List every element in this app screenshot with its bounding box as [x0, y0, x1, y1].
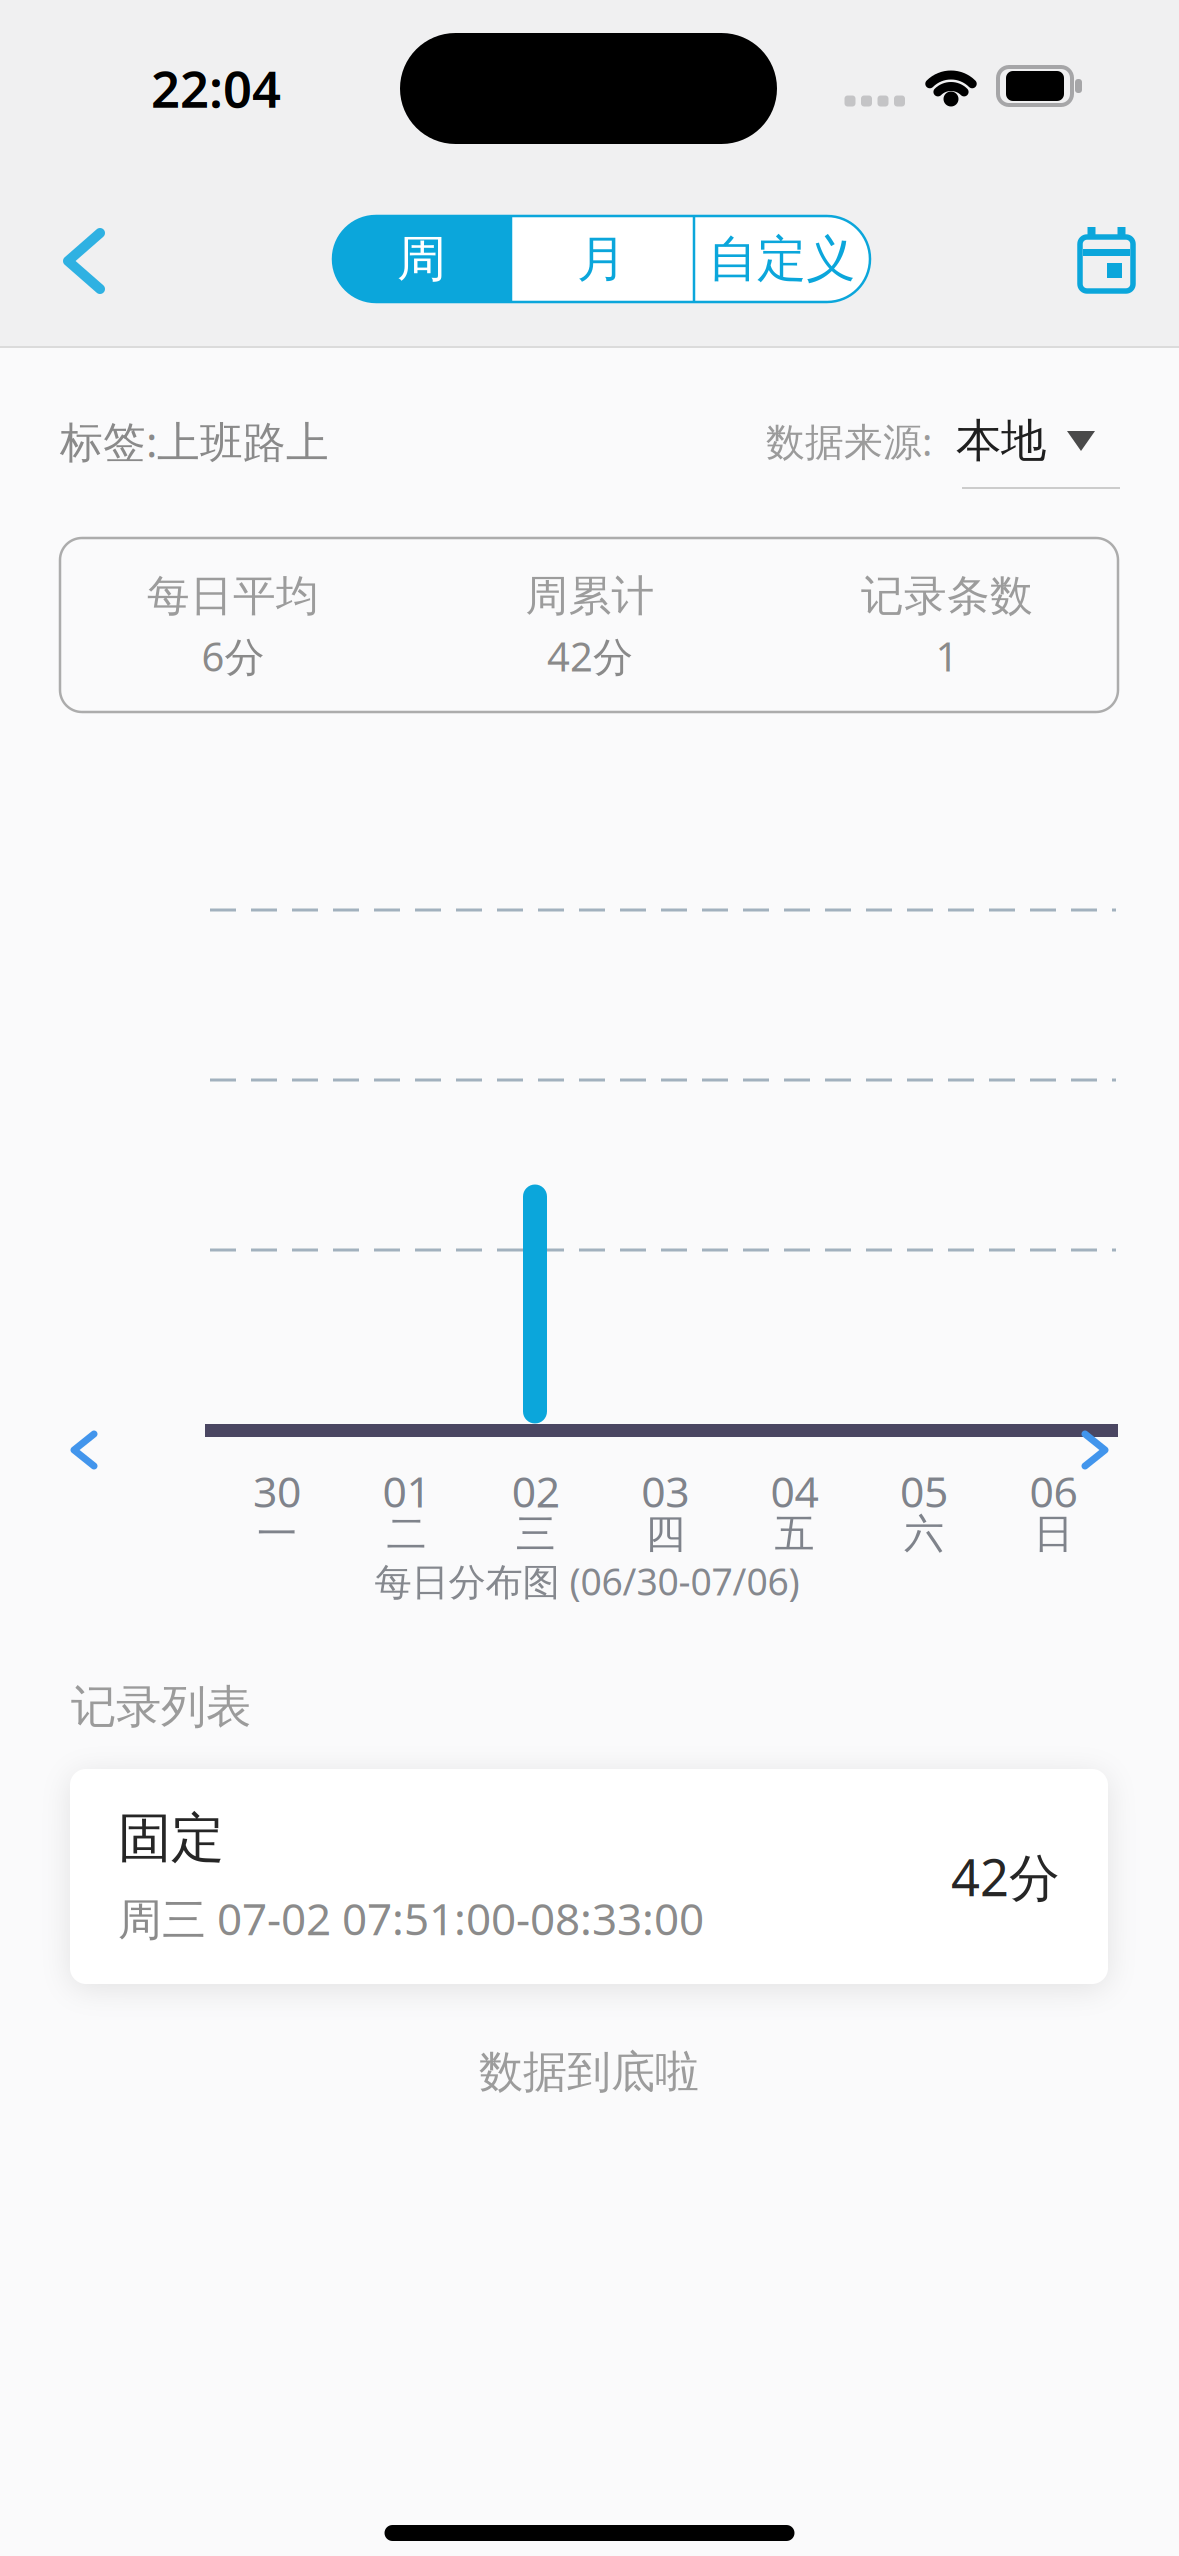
button[interactable]: 自定义	[693, 216, 870, 302]
staticText: 周三 07-02 07:51:00-08:33:00	[118, 1889, 704, 1947]
staticText: 固定	[118, 1805, 224, 1871]
button[interactable]	[44, 1410, 124, 1490]
button[interactable]	[1058, 211, 1154, 307]
staticText: 每日平均	[147, 570, 319, 622]
staticText: 本地	[956, 413, 1046, 469]
staticText: 01	[382, 1463, 430, 1519]
staticText: 六	[904, 1509, 944, 1558]
staticText: 周	[397, 229, 446, 289]
staticText: 30	[253, 1463, 301, 1519]
staticText: 二	[386, 1509, 426, 1558]
staticText: 42分	[547, 629, 633, 682]
staticText: 月	[577, 229, 626, 289]
staticText: 三	[516, 1509, 556, 1558]
staticText: 五	[775, 1509, 815, 1558]
staticText: 一	[257, 1509, 297, 1558]
button[interactable]: 本地	[932, 413, 1095, 469]
staticText: 03	[641, 1463, 689, 1519]
staticText: 每日分布图 (06/30-07/06)	[374, 1556, 799, 1606]
staticText: 05	[900, 1463, 948, 1519]
staticText: 四	[645, 1509, 685, 1558]
staticText: 06	[1029, 1463, 1077, 1519]
staticText: 日	[1033, 1509, 1073, 1558]
staticText: 自定义	[708, 229, 855, 289]
staticText: 02	[512, 1463, 560, 1519]
staticText: 数据到底啦	[479, 2045, 699, 2099]
staticText: 04	[771, 1463, 819, 1519]
staticText: 标签:上班路上	[60, 413, 329, 469]
staticText: 6分	[201, 629, 264, 682]
staticText: 42分	[951, 1843, 1060, 1910]
button[interactable]	[1055, 1410, 1135, 1490]
staticText: 记录列表	[71, 1679, 251, 1735]
staticText: 22:04	[151, 54, 281, 122]
staticText: 周累计	[525, 570, 654, 622]
staticText: 记录条数	[861, 570, 1033, 622]
staticText: 数据来源:	[766, 415, 932, 467]
staticText: 1	[935, 629, 958, 682]
button[interactable]	[34, 211, 134, 311]
button[interactable]: 周	[333, 216, 510, 302]
button[interactable]: 月	[510, 216, 693, 302]
button[interactable]: 固定	[70, 1769, 1108, 1984]
